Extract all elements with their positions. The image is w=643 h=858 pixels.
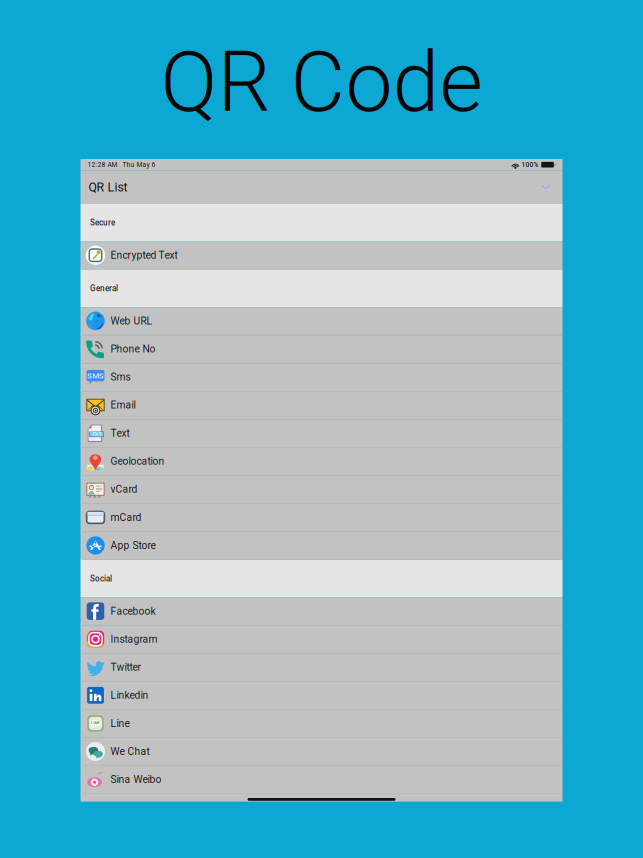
staticText: Email — [110, 399, 135, 411]
staticText: Sina Weibo — [110, 773, 161, 785]
button[interactable]: Geolocation — [80, 448, 562, 476]
staticText: Text — [110, 427, 129, 439]
staticText: Geolocation — [110, 455, 164, 467]
staticText: Encrypted Text — [110, 249, 177, 261]
staticText: 100% — [522, 161, 539, 169]
button[interactable]: Sina Weibo — [80, 766, 562, 794]
button[interactable]: Collapse list — [535, 178, 556, 196]
staticText: Phone No — [110, 343, 155, 355]
staticText: QR List — [88, 180, 127, 194]
button[interactable]: SMS — [80, 363, 562, 391]
staticText: LINE — [92, 721, 99, 725]
button[interactable]: mCard — [80, 504, 562, 532]
button[interactable]: vCard — [80, 476, 562, 504]
staticText: 12:28 AM — [87, 161, 117, 169]
button[interactable]: Encrypted Text — [80, 242, 562, 270]
staticText: Instagram — [110, 633, 157, 645]
staticText: SMS — [89, 372, 102, 380]
staticText: Twitter — [110, 661, 140, 673]
staticText: General — [90, 284, 118, 293]
staticText: Thu May 6 — [122, 161, 155, 169]
button[interactable]: We Chat — [80, 738, 562, 766]
button[interactable]: Facebook — [80, 597, 562, 626]
staticText: mCard — [110, 511, 141, 523]
button[interactable]: LINE — [80, 710, 562, 738]
button[interactable]: App Store — [80, 532, 562, 560]
button[interactable]: Email — [80, 391, 562, 420]
button[interactable]: Web URL — [80, 307, 562, 335]
staticText: QR Code — [160, 33, 482, 131]
staticText: Linkedin — [110, 689, 148, 701]
button[interactable]: Instagram — [80, 626, 562, 654]
staticText: Sms — [110, 371, 130, 383]
staticText: We Chat — [110, 745, 149, 757]
staticText: Secure — [90, 218, 115, 227]
staticText: vCard — [110, 483, 137, 495]
staticText: Social — [90, 574, 112, 583]
staticText: Line — [110, 717, 129, 729]
button[interactable]: Twitter — [80, 654, 562, 682]
button[interactable]: Linkedin — [80, 682, 562, 710]
button[interactable]: TXT — [80, 419, 562, 448]
staticText: Web URL — [110, 315, 152, 327]
staticText: TXT — [93, 432, 100, 436]
staticText: App Store — [110, 539, 155, 551]
staticText: Facebook — [110, 605, 155, 617]
button[interactable]: Phone No — [80, 335, 562, 363]
